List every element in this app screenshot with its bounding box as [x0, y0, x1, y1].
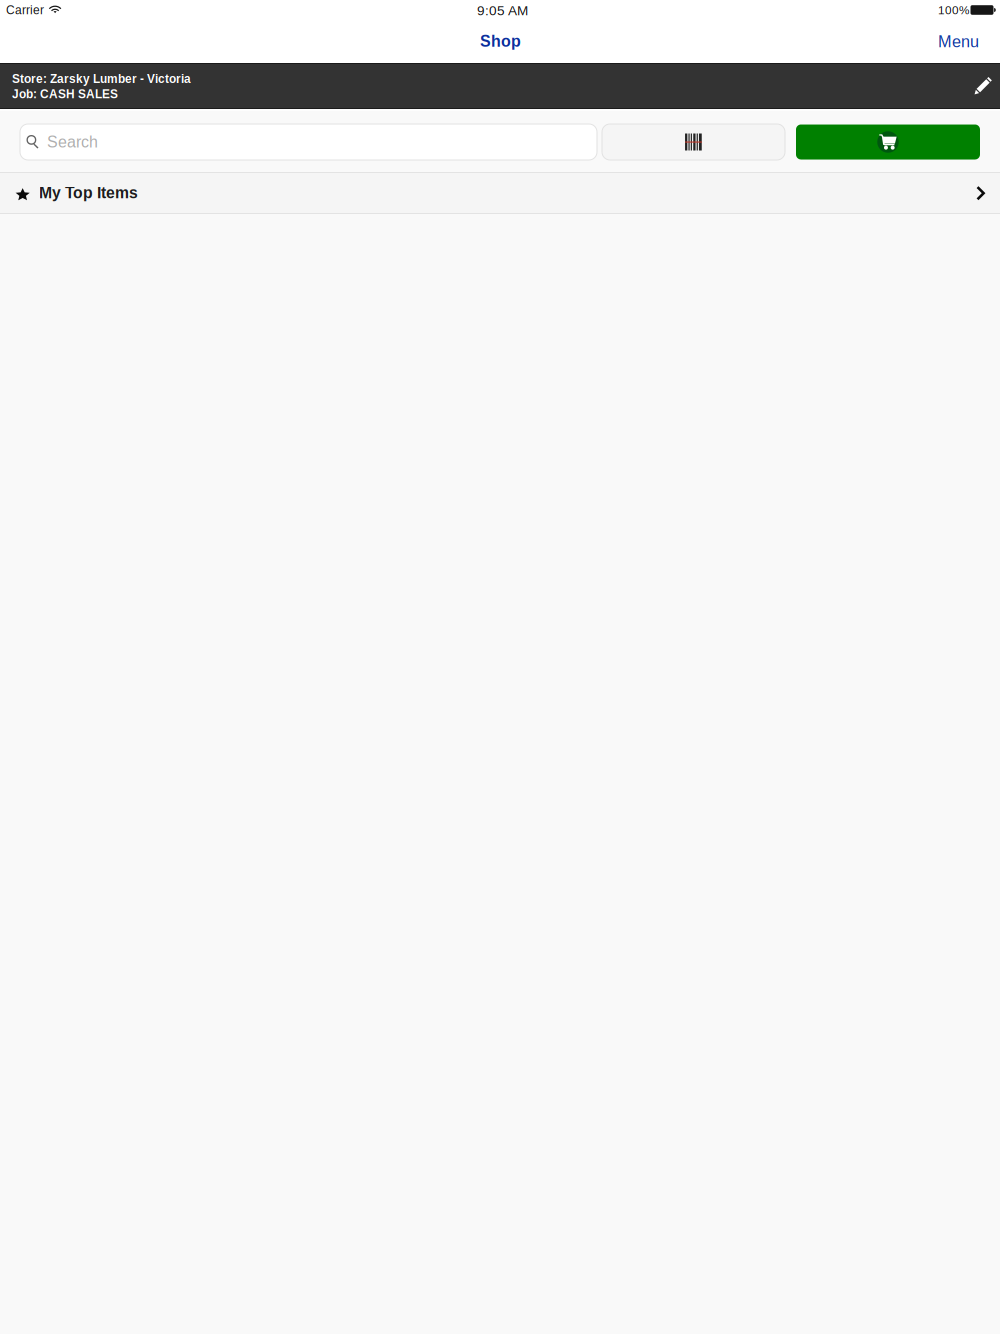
- button[interactable]: Menu: [938, 23, 1000, 60]
- button[interactable]: My Top Items: [0, 172, 1000, 214]
- button[interactable]: Cart: [796, 124, 980, 159]
- staticText: 100%: [938, 4, 969, 17]
- staticText: Search: [47, 133, 98, 151]
- staticText: Menu: [938, 32, 979, 51]
- button[interactable]: Edit store and job: [961, 63, 1000, 109]
- staticText: 9:05 AM: [477, 3, 528, 18]
- staticText: Shop: [480, 32, 521, 50]
- button[interactable]: Scan barcode: [602, 124, 785, 160]
- staticText: My Top Items: [39, 184, 138, 201]
- staticText: Store: Zarsky Lumber - Victoria: [12, 72, 191, 85]
- staticText: Carrier: [6, 3, 44, 17]
- staticText: Job: CASH SALES: [12, 87, 118, 101]
